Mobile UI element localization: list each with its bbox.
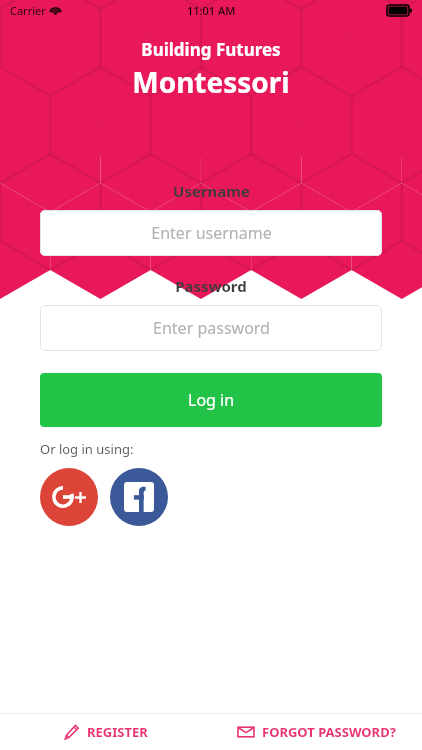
staticText: 11:01 AM xyxy=(187,3,236,18)
button[interactable]: Log in with Google Plus xyxy=(40,468,98,526)
staticText: Enter username xyxy=(151,222,272,244)
staticText: Password xyxy=(175,276,247,296)
staticText: Username xyxy=(173,181,250,201)
staticText: Or log in using: xyxy=(40,440,134,458)
staticText: Log in xyxy=(188,389,235,411)
staticText: Building Futures xyxy=(141,38,281,61)
button[interactable]: Log in with Facebook xyxy=(110,468,168,526)
staticText: FORGOT PASSWORD? xyxy=(262,723,396,741)
button[interactable]: FORGOT PASSWORD? xyxy=(211,723,422,741)
button[interactable]: REGISTER xyxy=(0,723,211,741)
button[interactable]: Log in xyxy=(40,373,382,427)
staticText: REGISTER xyxy=(87,723,148,741)
staticText: Montessori xyxy=(132,63,290,101)
button[interactable]: Enter username xyxy=(40,210,382,256)
button[interactable]: Enter password xyxy=(40,305,382,351)
staticText: Enter password xyxy=(153,317,270,339)
staticText: Carrier xyxy=(10,3,46,18)
